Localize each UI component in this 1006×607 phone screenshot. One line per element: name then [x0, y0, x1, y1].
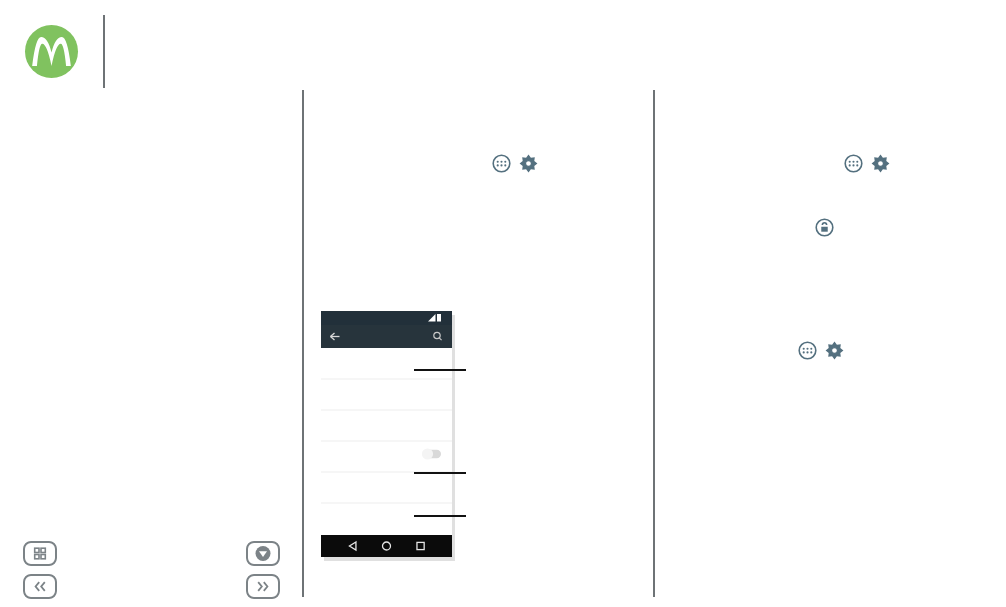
- button[interactable]: Apps: [492, 154, 511, 173]
- button[interactable]: Screen lock: [815, 218, 834, 237]
- button[interactable]: Settings: [519, 154, 538, 173]
- button[interactable]: Apps: [844, 154, 863, 173]
- button[interactable]: Next: [246, 574, 280, 599]
- button[interactable]: Apps: [798, 341, 817, 360]
- button[interactable]: Contents: [23, 541, 57, 566]
- button[interactable]: Settings: [825, 341, 844, 360]
- button[interactable]: Previous: [23, 574, 57, 599]
- button[interactable]: Motorola logo: [25, 25, 78, 78]
- button[interactable]: Collapse: [246, 541, 280, 566]
- button[interactable]: Settings: [871, 154, 890, 173]
